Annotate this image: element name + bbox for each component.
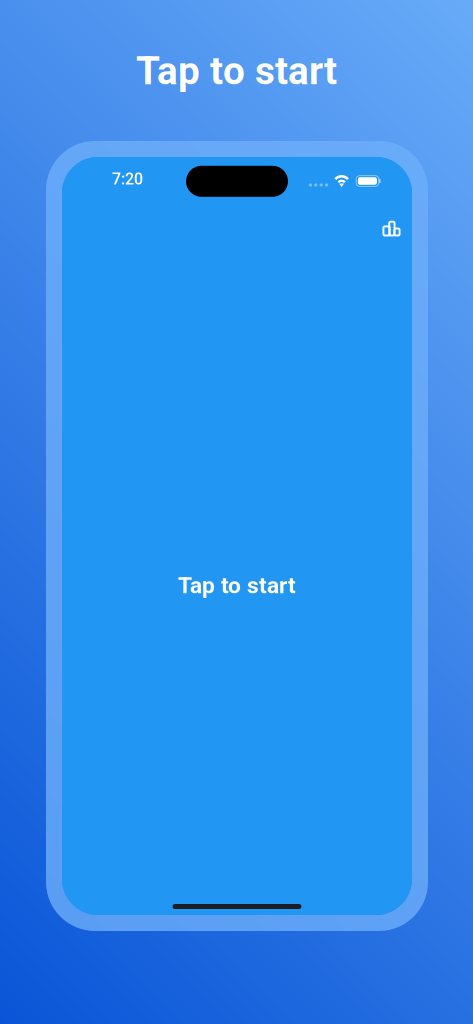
staticText: Tap to start (136, 48, 337, 94)
button[interactable]: Tap to start (62, 245, 412, 883)
staticText: Tap to start (178, 572, 296, 599)
staticText: 7:20 (112, 170, 143, 188)
button[interactable]: Statistics (361, 201, 395, 235)
